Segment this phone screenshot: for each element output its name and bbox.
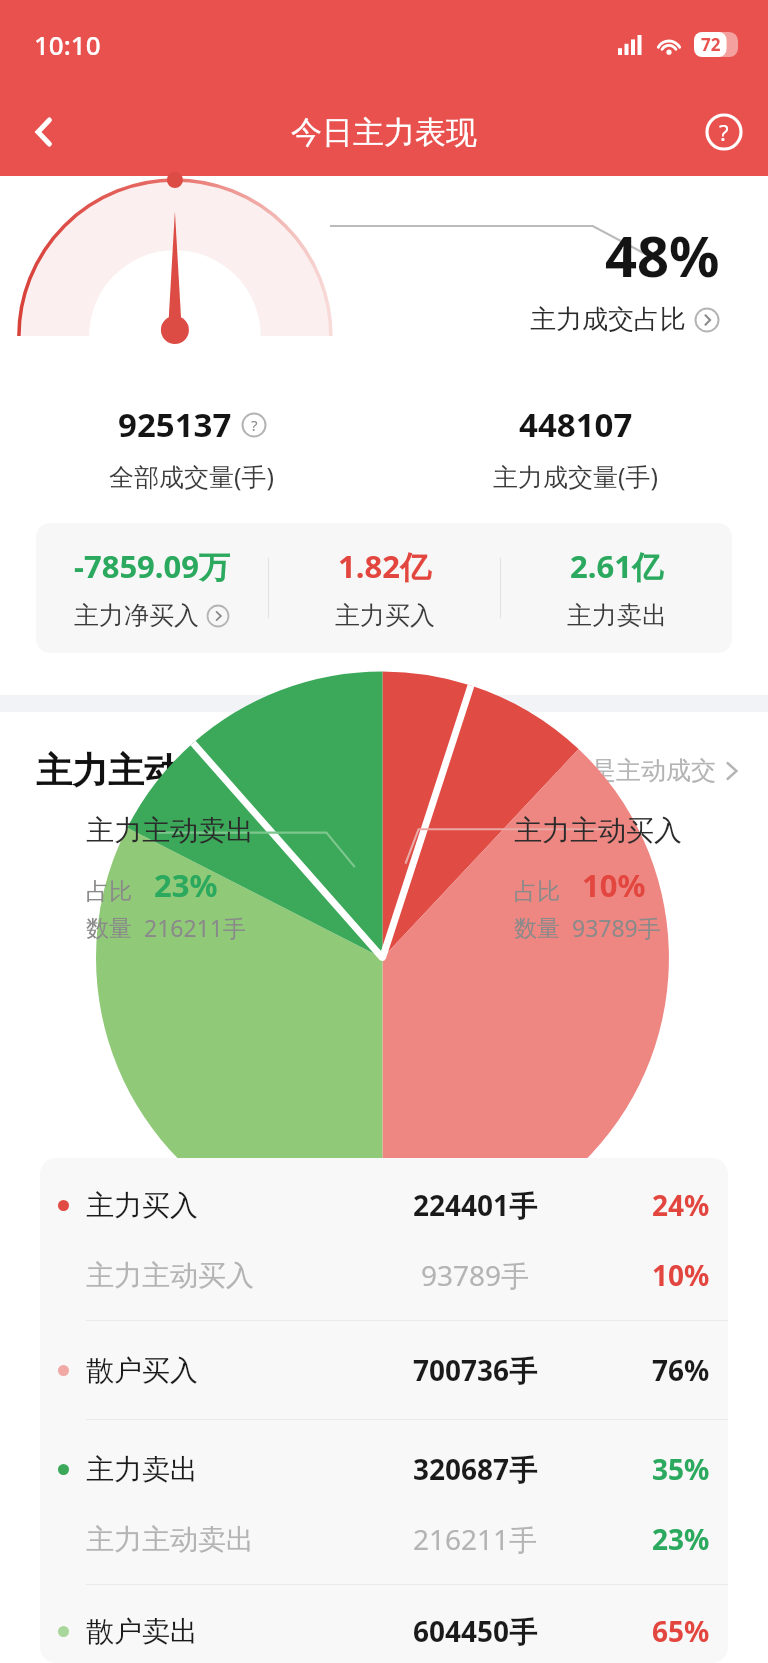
staticText: 主力主动成交意愿 [36,748,324,793]
staticText: 216211手 [144,912,246,943]
staticText: 224401手 [413,1186,538,1224]
button[interactable]: 散户卖出 [40,1599,728,1663]
staticText: 今日主力表现 [291,113,477,152]
button[interactable]: 主力买入 [40,1170,728,1240]
staticText: 占比 [514,877,560,906]
staticText: 全部成交量(手) [109,459,275,493]
button[interactable]: 主力主动买入 [40,1240,728,1310]
staticText: 925137 [118,402,232,447]
staticText: 主力主动买入 [86,1258,254,1293]
staticText: 主力卖出 [86,1452,198,1487]
staticText: 23% [154,864,218,906]
staticText: 主力主动买入 [514,813,682,848]
button[interactable]: 散户买入 [40,1335,728,1405]
button[interactable]: 1.82亿 [269,523,500,653]
staticText: 10:10 [34,27,101,62]
staticText: 448107 [519,402,633,447]
staticText: 35% [652,1450,710,1488]
staticText: ? [719,117,729,147]
staticText: 24% [652,1186,710,1224]
staticText: 65% [652,1612,710,1650]
button[interactable]: 主力卖出 [40,1434,728,1504]
staticText: 主力成交占比 [530,303,686,336]
staticText: 23% [652,1520,710,1558]
staticText: 主力买入 [86,1188,198,1223]
button[interactable]: 什么是主动成交 [541,755,740,786]
staticText: 2.61亿 [570,545,663,587]
staticText: 散户卖出 [86,1614,198,1649]
button[interactable]: 2.61亿 [501,523,732,653]
staticText: 10% [652,1256,710,1294]
button[interactable]: Back [0,88,88,176]
button[interactable]: Help [680,88,768,176]
staticText: 主力主动卖出 [86,813,254,848]
button[interactable]: 说明 [241,412,267,438]
staticText: 主力卖出 [567,600,667,631]
staticText: ? [251,415,258,435]
staticText: 93789手 [572,912,661,943]
staticText: 主力主动卖出 [86,1522,254,1557]
staticText: 216211手 [413,1520,538,1558]
staticText: 散户买入 [86,1353,198,1388]
staticText: 48% [605,217,720,293]
staticText: 72 [701,33,721,56]
staticText: 主力买入 [335,600,435,631]
staticText: 604450手 [413,1612,538,1650]
staticText: 93789手 [421,1256,530,1294]
button[interactable]: 主力成交占比 [530,303,720,336]
staticText: 320687手 [413,1450,538,1488]
staticText: 数量 [86,914,132,943]
staticText: -7859.09万 [74,545,231,587]
staticText: 10% [582,864,646,906]
staticText: 占比 [86,877,132,906]
staticText: 700736手 [413,1351,538,1389]
staticText: 数量 [514,914,560,943]
staticText: 主力净买入 [74,600,199,631]
staticText: 76% [652,1351,710,1389]
staticText: 什么是主动成交 [541,755,716,786]
staticText: 主力成交量(手) [493,459,659,493]
staticText: 1.82亿 [338,545,431,587]
button[interactable]: 主力主动卖出 [40,1504,728,1574]
button[interactable]: -7859.09万 [36,523,268,653]
